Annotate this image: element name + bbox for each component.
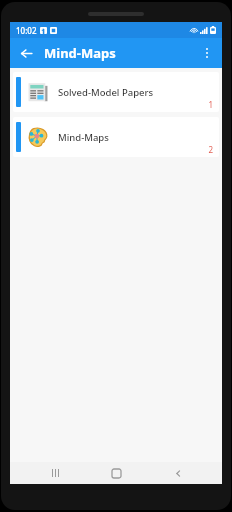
staticText: 2 xyxy=(208,144,213,155)
staticText: 1 xyxy=(208,99,213,110)
button[interactable]: More options xyxy=(196,42,218,64)
button[interactable]: Recent apps xyxy=(38,462,72,484)
button[interactable]: Solved-Model Papers xyxy=(13,72,219,112)
staticText: 10:02 xyxy=(16,25,37,36)
button[interactable]: Home xyxy=(99,462,133,484)
staticText: Mind-Maps xyxy=(44,44,116,62)
button[interactable]: Back xyxy=(161,462,195,484)
button[interactable]: Mind-Maps xyxy=(13,117,219,157)
button[interactable]: Back xyxy=(15,42,37,64)
staticText: Mind-Maps xyxy=(58,131,109,144)
staticText: Solved-Model Papers xyxy=(58,86,154,99)
